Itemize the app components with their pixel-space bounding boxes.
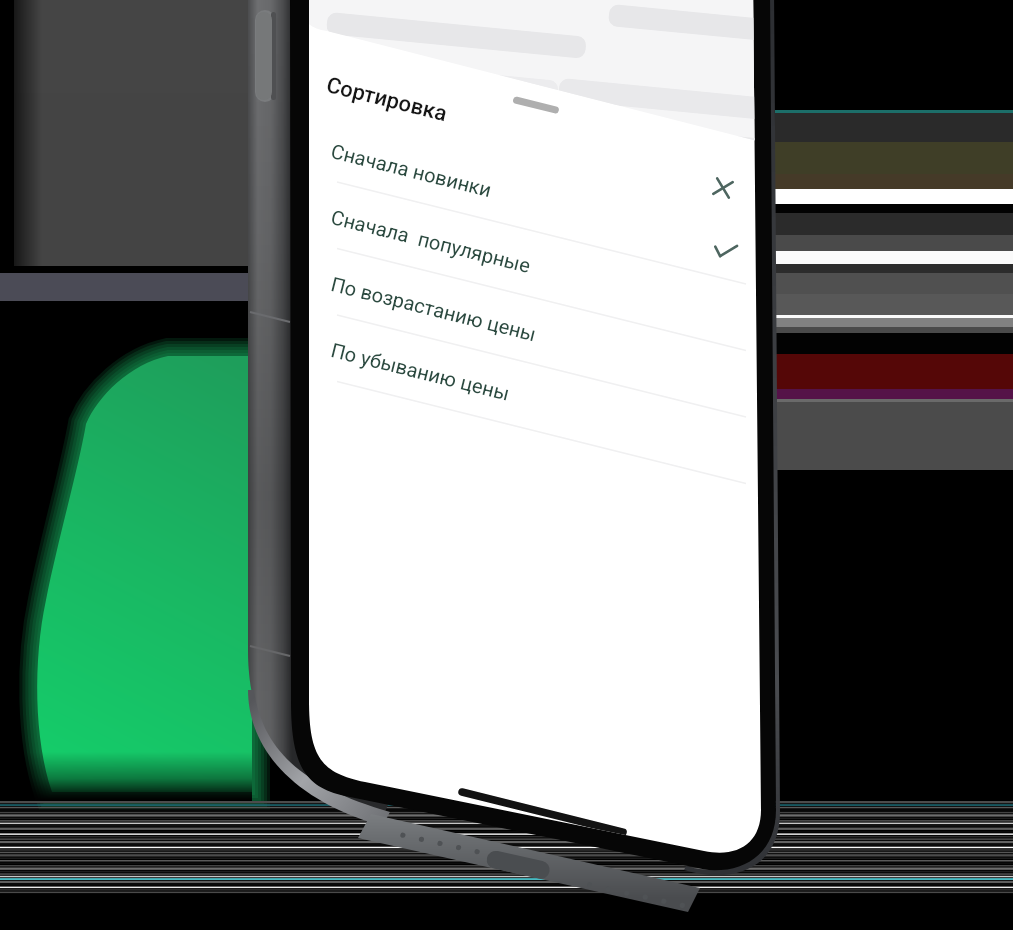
button[interactable]: Selected bbox=[702, 231, 746, 275]
button[interactable]: По возрастанию цены bbox=[321, 249, 737, 413]
staticText: По убыванию цены bbox=[329, 338, 512, 405]
button[interactable]: Close sheet bbox=[498, 84, 574, 116]
staticText: Сортировка bbox=[324, 72, 450, 127]
staticText: По возрастанию цены bbox=[329, 272, 539, 345]
staticText: Сначала популярные bbox=[329, 205, 533, 277]
button[interactable]: По убыванию цены bbox=[321, 315, 737, 479]
button[interactable]: Сначала новинки bbox=[321, 116, 737, 280]
button[interactable]: Сначала популярные bbox=[321, 182, 737, 346]
staticText: Сначала новинки bbox=[329, 139, 494, 201]
button[interactable]: Clear sorting bbox=[701, 166, 745, 210]
